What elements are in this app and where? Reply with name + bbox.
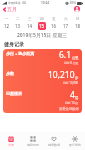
staticText: 健身记录 [27,143,39,147]
staticText: 10:24 [41,1,50,5]
staticText: 12 [4,23,10,29]
staticText: 目标 8 公里 [64,61,79,65]
staticText: 步数 [6,71,14,76]
staticText: 17 [63,23,69,29]
staticText: 今天 [8,143,14,147]
staticText: 二 [16,17,20,22]
button[interactable]: 健康数据 [43,132,64,150]
staticText: 查看全部数据 [59,107,79,111]
staticText: 六 [64,17,68,22]
other: Back [2,7,7,12]
staticText: 五 [52,17,56,22]
staticText: 五月 [7,6,17,12]
staticText: 中国移动 [8,1,21,5]
staticText: 6.1 [59,49,72,61]
staticText: 14 [27,23,33,29]
button[interactable]: 健身记录 [22,132,43,150]
staticText: 目标 10 层 [65,101,79,105]
staticText: 健康数据 [48,143,60,147]
button[interactable]: 12 [1,22,12,30]
staticText: 日 [76,17,80,22]
button[interactable]: 今天 [0,132,22,150]
staticText: 一 [5,17,9,22]
button[interactable]: 14 [24,22,36,30]
button[interactable]: 步行 + 跑步距离 [3,49,82,113]
staticText: 步行 + 跑步距离 [6,51,35,56]
staticText: 2019年5月15日 星期三 [17,32,68,39]
button[interactable]: Profile [74,6,80,12]
button[interactable]: 16 [48,22,60,30]
staticText: 83% [70,1,76,5]
staticText: 10,210 [48,69,75,81]
staticText: 医疗急救 [69,143,81,147]
staticText: 已爬楼层 [6,91,22,96]
staticText: 4G [22,1,26,5]
staticText: 健身记录 [4,41,24,47]
staticText: 18 [75,23,81,29]
staticText: 13 [15,23,21,29]
button[interactable]: Back [2,6,17,12]
button[interactable]: 17 [60,22,72,30]
button[interactable]: 查看全部数据 [59,107,79,111]
staticText: 目标 10,000 [63,81,79,85]
staticText: 层 [75,96,79,100]
staticText: 步 [75,76,79,80]
button[interactable]: 15 [36,22,48,30]
staticText: 15 [39,23,45,29]
button[interactable]: 13 [12,22,24,30]
staticText: 三 [28,17,32,22]
staticText: 16 [51,23,57,29]
button[interactable]: 18 [72,22,84,30]
staticText: 公里 [72,56,79,60]
staticText: 4 [70,89,75,101]
staticText: 四 [40,17,44,22]
button[interactable]: 医疗急救 [64,132,85,150]
